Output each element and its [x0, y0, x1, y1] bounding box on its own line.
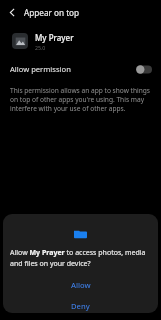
staticText: Allow — [71, 280, 91, 290]
button[interactable]: Back — [0, 0, 24, 24]
button[interactable]: Allow permission — [0, 60, 161, 78]
staticText: Allow My Prayer to access photos, media … — [10, 248, 151, 268]
staticText: Allow permission — [10, 64, 71, 74]
button[interactable]: Allow — [3, 277, 158, 292]
staticText: Appear on top — [24, 7, 80, 18]
staticText: 25.0 — [35, 44, 46, 51]
staticText: Deny — [71, 301, 90, 311]
button[interactable]: My Prayer — [0, 30, 161, 52]
button[interactable]: Deny — [3, 298, 158, 313]
staticText: My Prayer — [35, 32, 74, 43]
staticText: This permission allows an app to show th… — [10, 86, 151, 113]
